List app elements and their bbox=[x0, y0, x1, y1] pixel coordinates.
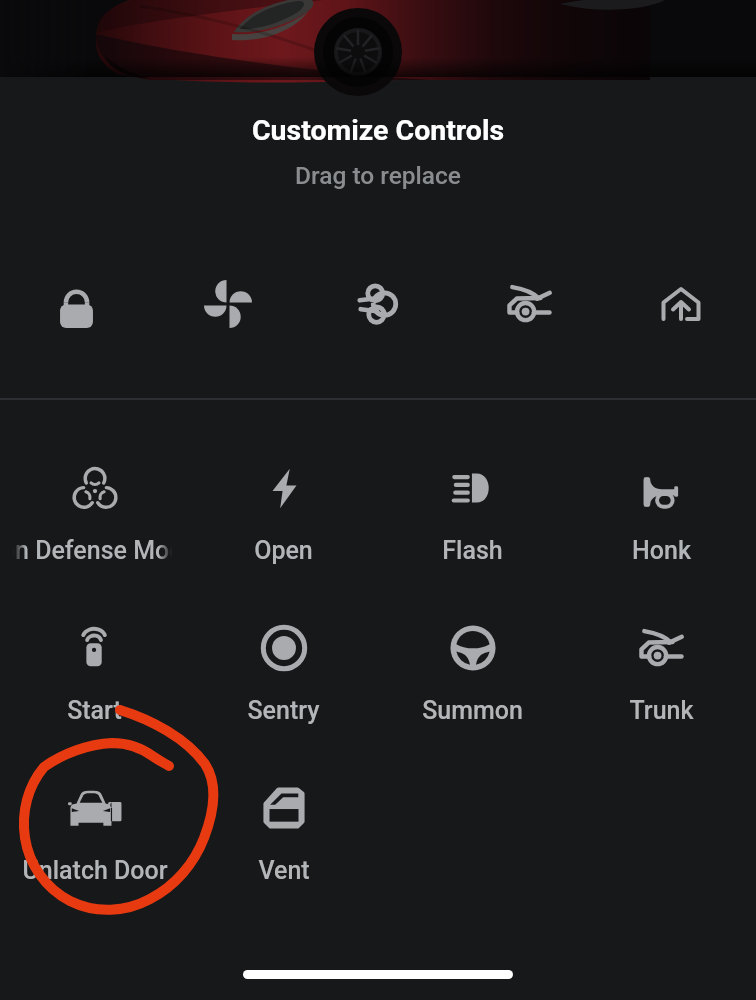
button[interactable]: Flash bbox=[378, 454, 567, 574]
button[interactable]: Defrost bbox=[303, 252, 454, 356]
staticText: Flash bbox=[442, 536, 503, 565]
button[interactable]: Bioweapon Defense Mode bbox=[0, 454, 189, 574]
staticText: Unlatch Door bbox=[22, 856, 168, 885]
staticText: Summon bbox=[422, 696, 523, 725]
button[interactable]: Frunk bbox=[454, 252, 605, 356]
button[interactable]: Lock bbox=[0, 252, 152, 356]
button[interactable]: Unlatch Door bbox=[0, 774, 189, 894]
staticText: Bioweapon Defense Mode bbox=[0, 536, 189, 565]
staticText: Honk bbox=[632, 536, 691, 565]
staticText: Start bbox=[67, 696, 122, 725]
staticText: Drag to replace bbox=[0, 161, 756, 190]
button[interactable]: Sentry bbox=[189, 614, 378, 734]
staticText: Sentry bbox=[247, 696, 320, 725]
button[interactable]: Summon bbox=[378, 614, 567, 734]
button[interactable]: Vent bbox=[189, 774, 378, 894]
staticText: Trunk bbox=[629, 696, 694, 725]
button[interactable]: Open bbox=[189, 454, 378, 574]
button[interactable]: Homelink bbox=[605, 252, 756, 356]
button[interactable]: Honk bbox=[567, 454, 756, 574]
button[interactable]: Start bbox=[0, 614, 189, 734]
button[interactable]: Fan bbox=[152, 252, 303, 356]
staticText: Customize Controls bbox=[0, 114, 756, 147]
staticText: Vent bbox=[258, 856, 310, 885]
button[interactable]: Trunk bbox=[567, 614, 756, 734]
staticText: Open bbox=[254, 536, 313, 565]
